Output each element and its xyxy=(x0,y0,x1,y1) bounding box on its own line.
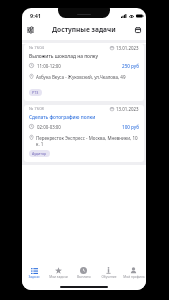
staticText: Доступные задачи xyxy=(52,25,116,34)
staticText: № 7604 xyxy=(29,45,44,51)
button[interactable]: № 7604 xyxy=(24,44,144,101)
button[interactable]: Calendar xyxy=(131,23,144,36)
staticText: 9:41 xyxy=(30,12,41,19)
staticText: 100 руб xyxy=(122,124,139,130)
staticText: Выложить шоколад на полку xyxy=(29,53,139,60)
staticText: Азбука Вкуса - Жуковский, ул.Чкалова, 49 xyxy=(36,74,126,80)
staticText: Задачи xyxy=(28,275,40,279)
staticText: 11:00-12:00 xyxy=(37,63,61,69)
button[interactable]: Задачи xyxy=(22,265,46,279)
staticText: Обучение xyxy=(101,275,117,279)
staticText: Перекресток Экспресс - Москва, Мневники,… xyxy=(36,135,139,147)
button[interactable]: Мой профиль xyxy=(121,265,146,279)
button[interactable]: Filter xyxy=(24,23,37,36)
staticText: Аудитор xyxy=(32,151,47,156)
button[interactable]: Выплаты xyxy=(71,265,96,279)
staticText: 02:00-03:00 xyxy=(37,124,61,130)
button[interactable]: Обучение xyxy=(96,265,121,279)
staticText: 13.01.2023 xyxy=(116,45,139,51)
staticText: 250 руб xyxy=(122,63,139,69)
staticText: Мои задачи xyxy=(49,275,68,279)
staticText: Сделать фотографию полки xyxy=(29,114,139,121)
staticText: 13.01.2023 xyxy=(116,106,139,112)
staticText: № 7608 xyxy=(29,106,44,112)
staticText: РТЗ xyxy=(32,90,39,95)
button[interactable]: № 7608 xyxy=(24,105,144,162)
staticText: Выплаты xyxy=(77,275,91,279)
staticText: Мой профиль xyxy=(123,275,145,279)
button[interactable]: Мои задачи xyxy=(46,265,71,279)
